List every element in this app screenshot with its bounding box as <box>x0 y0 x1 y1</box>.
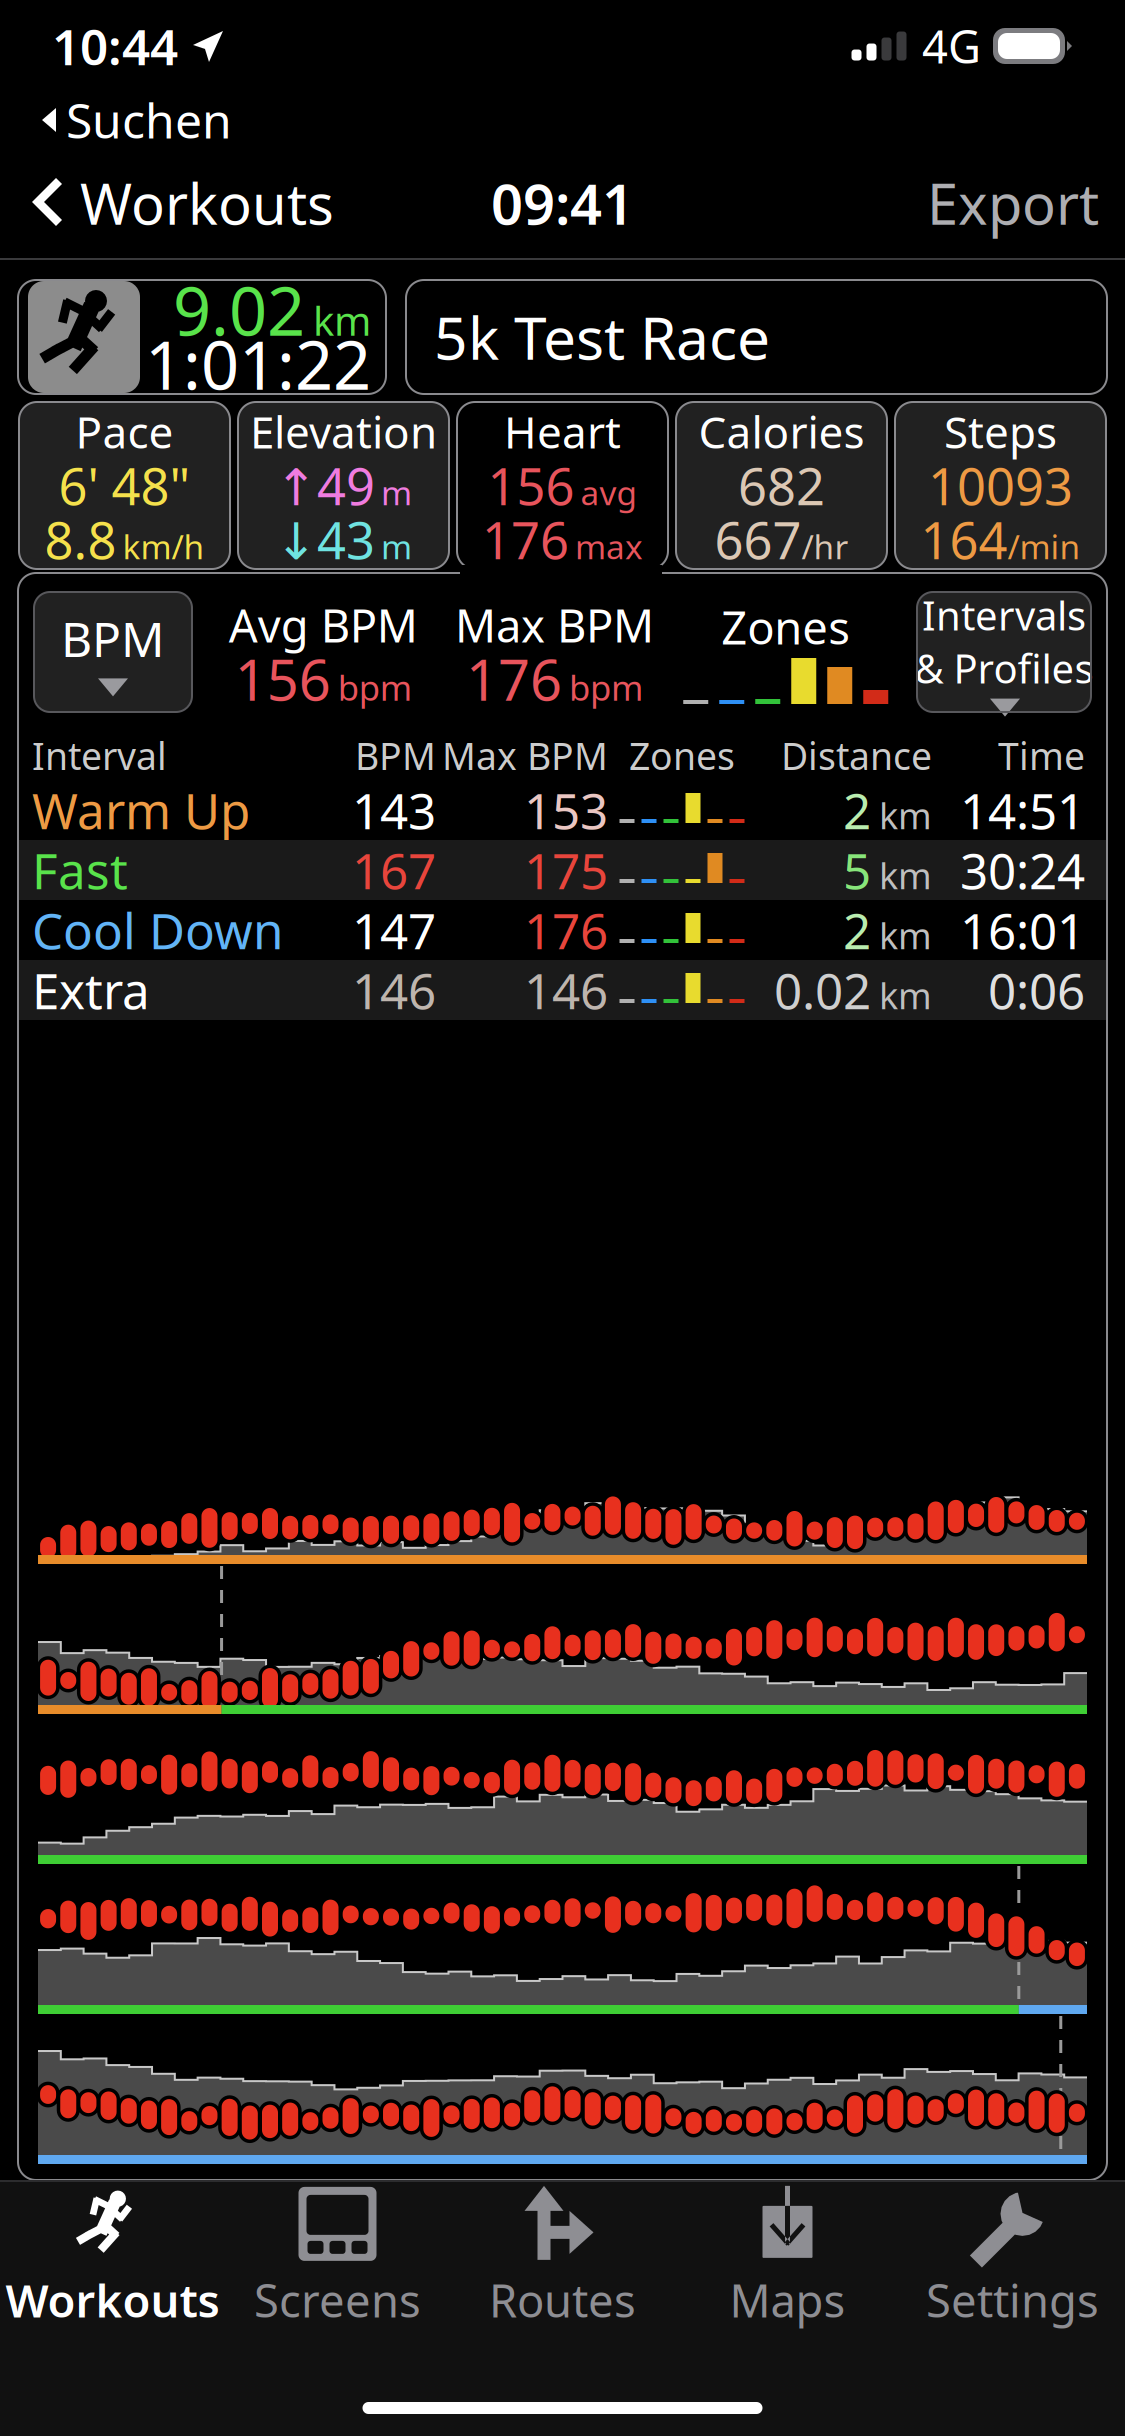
staticText: ↑49 <box>275 452 375 519</box>
staticText: Workouts <box>5 2270 219 2330</box>
staticText: ↓43 <box>275 506 375 573</box>
button[interactable]: Screens <box>225 2182 450 2330</box>
staticText: 176 <box>524 897 608 963</box>
staticText: 10:44 <box>52 13 178 79</box>
staticText: Suchen <box>66 88 232 152</box>
staticText: Fast <box>32 837 128 903</box>
staticText: 2 <box>843 897 871 963</box>
staticText: Zones <box>629 731 735 780</box>
staticText: Elevation <box>250 402 437 461</box>
staticText: Max BPM <box>442 731 608 780</box>
staticText: Screens <box>254 2270 421 2330</box>
staticText: Extra <box>32 957 150 1023</box>
staticText: 146 <box>524 957 608 1023</box>
staticText: bpm <box>338 664 412 710</box>
staticText: 143 <box>352 777 436 843</box>
button[interactable]: Export <box>901 148 1125 258</box>
staticText: 147 <box>352 897 436 963</box>
staticText: km <box>879 791 932 839</box>
staticText: 156 <box>487 452 574 519</box>
staticText: 682 <box>738 452 825 519</box>
staticText: Time <box>998 731 1085 780</box>
staticText: 10093 <box>928 452 1073 519</box>
staticText: 8.8 <box>44 506 116 573</box>
button[interactable]: Intervals <box>917 592 1091 712</box>
staticText: Interval <box>32 731 167 780</box>
staticText: 9.02 <box>173 266 305 354</box>
staticText: max <box>575 524 643 568</box>
button[interactable]: Steps <box>895 402 1106 569</box>
staticText: 6' 48" <box>58 452 190 519</box>
button[interactable]: Settings <box>900 2182 1125 2330</box>
staticText: & Profiles <box>914 641 1093 695</box>
staticText: Warm Up <box>32 777 250 843</box>
staticText: km/h <box>122 524 204 568</box>
staticText: Avg BPM <box>229 595 418 655</box>
staticText: Zones <box>721 597 850 657</box>
staticText: 175 <box>524 837 608 903</box>
button[interactable]: BPM <box>34 592 192 712</box>
staticText: 30:24 <box>960 837 1085 903</box>
staticText: 153 <box>524 777 608 843</box>
staticText: km <box>879 911 932 959</box>
staticText: Heart <box>504 402 621 461</box>
staticText: BPM <box>61 607 165 670</box>
staticText: BPM <box>355 731 436 780</box>
button[interactable]: Routes <box>450 2182 675 2330</box>
staticText: Workouts <box>80 166 334 240</box>
staticText: 146 <box>352 957 436 1023</box>
staticText: Pace <box>75 402 173 461</box>
staticText: /hr <box>801 524 848 568</box>
button[interactable]: Workouts <box>0 148 360 258</box>
staticText: Calories <box>698 402 864 461</box>
staticText: m <box>381 470 412 514</box>
staticText: Export <box>927 166 1099 240</box>
staticText: 167 <box>352 837 436 903</box>
staticText: Max BPM <box>455 595 654 655</box>
staticText: 1:01:22 <box>145 320 371 408</box>
staticText: 164 <box>920 506 1007 573</box>
staticText: 156 <box>235 642 331 716</box>
button[interactable]: Calories <box>676 402 887 569</box>
staticText: 16:01 <box>960 897 1085 963</box>
staticText: avg <box>580 470 637 514</box>
staticText: Distance <box>781 731 932 780</box>
staticText: Intervals <box>922 588 1086 641</box>
button[interactable]: Maps <box>675 2182 900 2330</box>
button[interactable]: Heart <box>457 402 668 569</box>
staticText: Cool Down <box>32 897 283 963</box>
staticText: 667 <box>714 506 801 573</box>
staticText: 09:41 <box>491 166 634 240</box>
staticText: km <box>313 294 371 347</box>
staticText: 0.02 <box>774 957 871 1023</box>
staticText: Routes <box>489 2270 636 2330</box>
staticText: km <box>879 971 932 1019</box>
staticText: m <box>381 524 412 568</box>
staticText: /min <box>1007 524 1080 568</box>
staticText: Settings <box>926 2270 1099 2330</box>
staticText: 14:51 <box>960 777 1085 843</box>
staticText: 0:06 <box>988 957 1085 1023</box>
staticText: Maps <box>729 2270 845 2330</box>
button[interactable]: Elevation <box>238 402 449 569</box>
staticText: bpm <box>569 664 643 710</box>
staticText: 176 <box>466 642 562 716</box>
staticText: km <box>879 851 932 899</box>
staticText: 176 <box>482 506 569 573</box>
staticText: 5 <box>843 837 871 903</box>
button[interactable]: Pace <box>19 402 230 569</box>
staticText: 4G <box>922 16 981 76</box>
staticText: 2 <box>843 777 871 843</box>
staticText: Steps <box>944 402 1057 461</box>
staticText: 5k Test Race <box>434 298 770 376</box>
button[interactable]: Workouts <box>0 2182 225 2330</box>
